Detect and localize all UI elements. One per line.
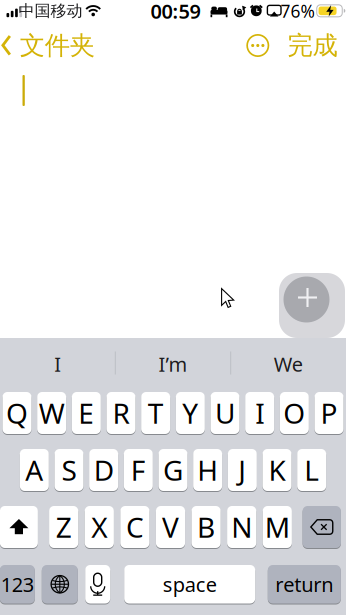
button[interactable]: D (89, 448, 118, 491)
staticText: 00:59 (150, 0, 200, 24)
button[interactable]: I (245, 391, 274, 434)
staticText: G (163, 451, 183, 489)
staticText: C (126, 508, 144, 546)
button[interactable]: 完成 (287, 30, 337, 61)
staticText: M (265, 508, 290, 546)
button[interactable]: G (158, 448, 187, 491)
button[interactable]: S (54, 448, 83, 491)
staticText: E (78, 394, 94, 432)
staticText: Z (56, 508, 72, 546)
button[interactable]: B (191, 505, 221, 548)
button[interactable]: Shift (0, 505, 38, 548)
button[interactable]: Q (2, 391, 31, 434)
button[interactable]: X (85, 505, 114, 548)
button[interactable]: U (210, 391, 239, 434)
staticText: W (39, 394, 65, 432)
button[interactable]: Z (49, 505, 78, 548)
button[interactable]: O (280, 391, 309, 434)
button[interactable]: 更多 (247, 34, 269, 57)
staticText: return (275, 571, 333, 598)
button[interactable]: Delete (303, 505, 341, 548)
staticText: P (320, 394, 337, 432)
button[interactable]: K (262, 448, 291, 491)
button[interactable]: return (268, 564, 341, 604)
staticText: 76% (280, 0, 314, 22)
button[interactable]: H (193, 448, 222, 491)
staticText: 123 (1, 571, 34, 598)
staticText: A (25, 451, 43, 489)
staticText: Q (6, 394, 28, 432)
staticText: Y (182, 394, 198, 432)
button[interactable]: We (232, 339, 345, 389)
staticText: L (304, 451, 319, 489)
button[interactable]: M (263, 505, 292, 548)
button[interactable]: W (37, 391, 66, 434)
staticText: D (94, 451, 114, 489)
button[interactable]: C (120, 505, 149, 548)
button[interactable]: I’m (116, 339, 229, 389)
staticText: J (238, 451, 246, 489)
staticText: 完成 (287, 30, 337, 61)
button[interactable]: I (1, 339, 114, 389)
staticText: V (162, 508, 179, 546)
button[interactable]: space (124, 564, 255, 604)
staticText: F (131, 451, 146, 489)
staticText: U (215, 394, 235, 432)
staticText: O (283, 394, 305, 432)
staticText: I (255, 394, 264, 432)
button[interactable]: R (106, 391, 135, 434)
staticText: I’m (158, 351, 187, 377)
staticText: 中国移动 (19, 1, 83, 21)
staticText: T (148, 394, 164, 432)
staticText: K (268, 451, 285, 489)
staticText: I (54, 351, 61, 377)
staticText: space (163, 571, 217, 598)
button[interactable]: Dictate (85, 564, 110, 604)
staticText: We (274, 351, 303, 377)
button[interactable]: P (314, 391, 343, 434)
button[interactable]: Y (176, 391, 205, 434)
staticText: R (112, 394, 129, 432)
button[interactable]: E (72, 391, 101, 434)
button[interactable]: F (124, 448, 153, 491)
button[interactable]: A (20, 448, 49, 491)
staticText: H (197, 451, 218, 489)
button[interactable]: J (228, 448, 257, 491)
button[interactable]: L (297, 448, 326, 491)
button[interactable]: T (141, 391, 170, 434)
button[interactable]: Next keyboard (42, 564, 78, 604)
button[interactable]: N (227, 505, 256, 548)
staticText: 文件夹 (20, 30, 95, 61)
button[interactable]: Add (279, 273, 345, 338)
staticText: B (197, 508, 215, 546)
button[interactable]: V (156, 505, 185, 548)
button[interactable]: 123 (0, 564, 35, 604)
button[interactable]: 返回文件夹 (1, 30, 95, 61)
staticText: S (61, 451, 76, 489)
staticText: X (91, 508, 107, 546)
staticText: N (231, 508, 252, 546)
